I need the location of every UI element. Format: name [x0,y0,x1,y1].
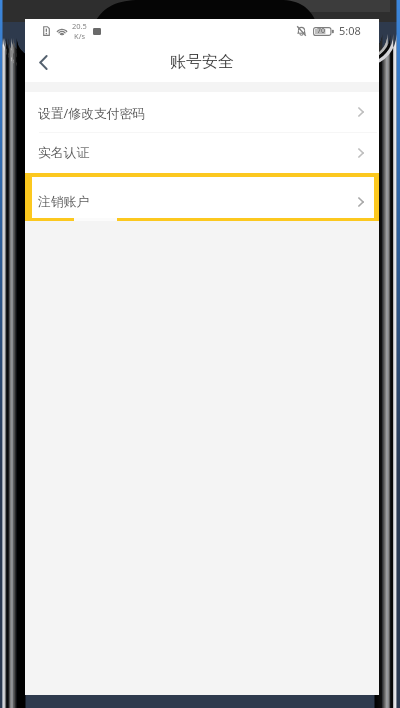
button[interactable]: 设置/修改支付密码 [25,92,379,132]
staticText: 注销账户 [38,194,90,210]
button[interactable]: 注销账户 [25,173,379,221]
button[interactable]: 实名认证 [25,133,379,173]
staticText: 70 [317,26,326,36]
staticText: 账号安全 [170,52,234,72]
staticText: 设置/修改支付密码 [38,104,146,121]
staticText: 实名认证 [38,145,90,161]
staticText: K/s [74,31,86,41]
staticText: 5:08 [339,23,361,38]
staticText: 20.5 [72,21,87,31]
button[interactable]: Back [25,44,61,80]
